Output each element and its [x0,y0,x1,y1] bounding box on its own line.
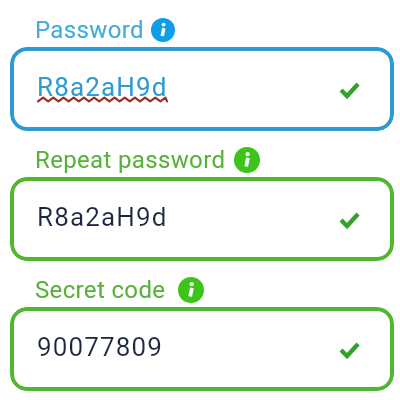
button[interactable]: 90077809 [10,307,394,391]
button[interactable]: More information [178,277,204,303]
staticText: R8a2aH9d [37,72,168,102]
staticText: R8a2aH9d [37,202,168,232]
button[interactable]: R8a2aH9d [10,47,394,131]
button[interactable]: More information [151,18,175,42]
staticText: 90077809 [37,332,164,362]
button[interactable]: R8a2aH9d [10,177,394,261]
staticText: Secret code [35,276,166,304]
button[interactable]: More information [234,147,260,173]
staticText: Password [35,16,144,44]
staticText: Repeat password [35,146,226,174]
